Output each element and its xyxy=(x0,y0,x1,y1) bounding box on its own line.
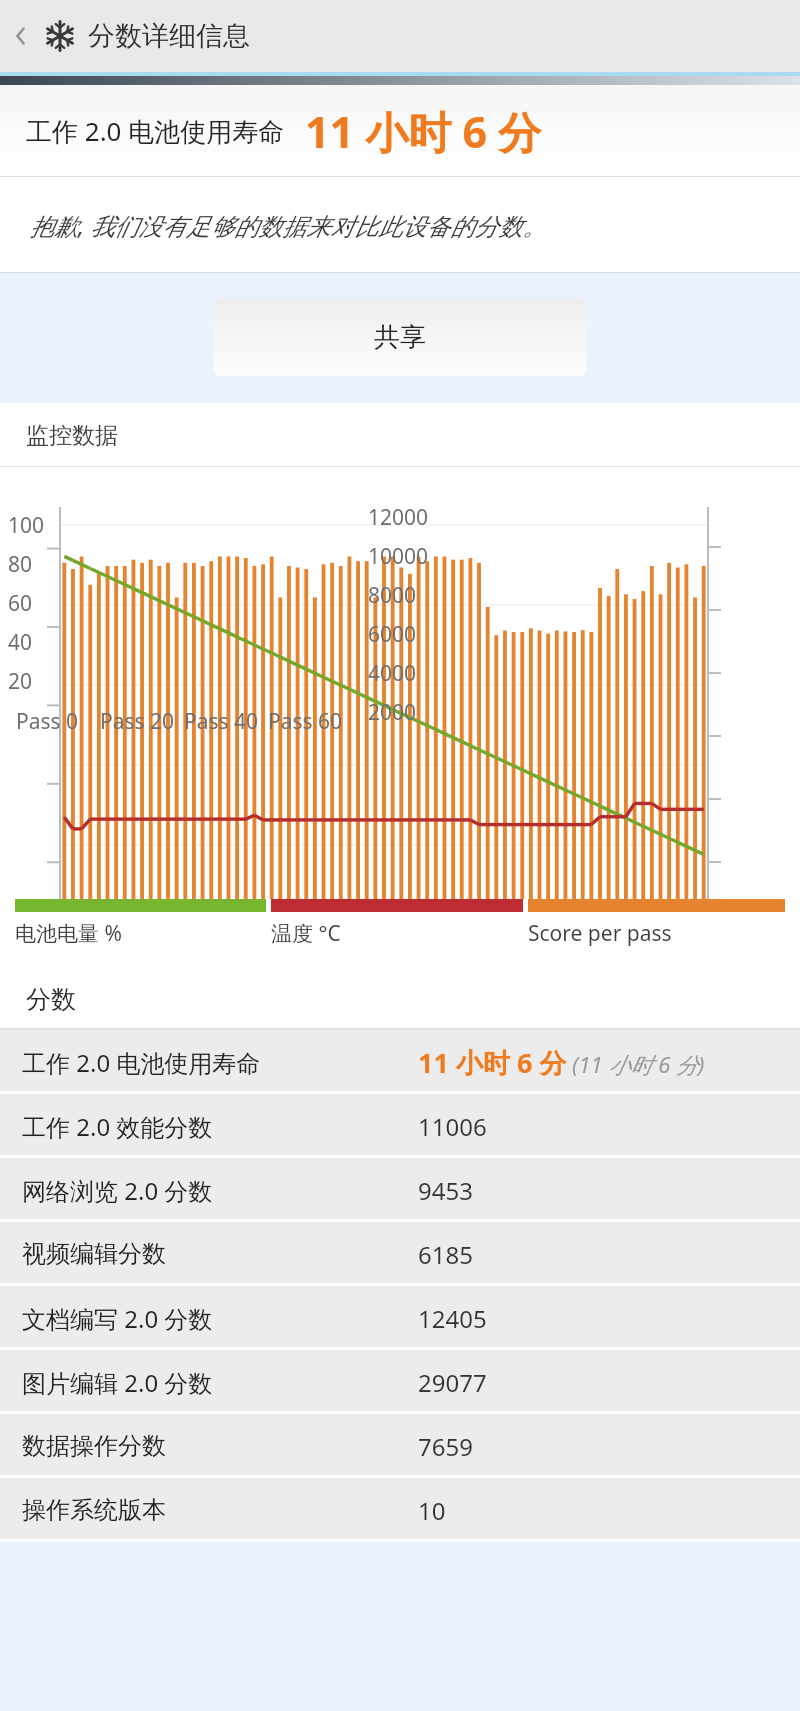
button[interactable]: 网络浏览 2.0 分数 xyxy=(0,1158,800,1222)
staticText: 11 小时 6 分 (11 小时 6 分) xyxy=(418,1044,705,1081)
staticText: 数据操作分数 xyxy=(22,1431,166,1461)
staticText: 9453 xyxy=(418,1174,473,1207)
button[interactable]: 操作系统版本 xyxy=(0,1478,800,1542)
staticText: 60 xyxy=(8,589,52,618)
staticText: 监控数据 xyxy=(26,421,118,450)
staticText: 7659 xyxy=(418,1430,473,1463)
staticText: 40 xyxy=(8,628,52,657)
staticText: 29077 xyxy=(418,1366,487,1399)
staticText: 分数详细信息 xyxy=(88,19,250,53)
staticText: 6000 xyxy=(368,620,417,649)
staticText: 12405 xyxy=(418,1302,487,1335)
staticText: 10 xyxy=(418,1494,446,1527)
staticText: 视频编辑分数 xyxy=(22,1239,166,1269)
staticText: 6185 xyxy=(418,1238,473,1271)
staticText: 11 小时 6 分 xyxy=(305,102,542,161)
staticText: 温度 °C xyxy=(271,919,341,948)
staticText: 工作 2.0 效能分数 xyxy=(22,1110,213,1143)
button[interactable]: 工作 2.0 电池使用寿命 xyxy=(0,1030,800,1094)
staticText: 20 xyxy=(8,667,52,696)
staticText: Pass 40 xyxy=(184,707,259,736)
button[interactable]: 视频编辑分数 xyxy=(0,1222,800,1286)
button[interactable]: 图片编辑 2.0 分数 xyxy=(0,1350,800,1414)
staticText: 图片编辑 2.0 分数 xyxy=(22,1366,213,1399)
button[interactable]: 数据操作分数 xyxy=(0,1414,800,1478)
staticText: 工作 2.0 电池使用寿命 xyxy=(22,1046,261,1079)
staticText: 网络浏览 2.0 分数 xyxy=(22,1174,213,1207)
staticText: 11006 xyxy=(418,1110,487,1143)
staticText: 80 xyxy=(8,550,52,579)
staticText: Pass 20 xyxy=(100,707,175,736)
staticText: 抱歉, 我们没有足够的数据来对比此设备的分数。 xyxy=(30,209,547,242)
staticText: Pass 60 xyxy=(268,707,343,736)
staticText: 12000 xyxy=(368,503,429,532)
staticText: 10000 xyxy=(368,542,429,571)
button[interactable]: 文档编写 2.0 分数 xyxy=(0,1286,800,1350)
button[interactable]: 共享 xyxy=(214,298,586,376)
staticText: 操作系统版本 xyxy=(22,1495,166,1525)
staticText: 8000 xyxy=(368,581,417,610)
staticText: 文档编写 2.0 分数 xyxy=(22,1302,213,1335)
staticText: 工作 2.0 电池使用寿命 xyxy=(26,113,285,149)
staticText: Pass 0 xyxy=(16,707,79,736)
staticText: Score per pass xyxy=(528,919,672,948)
staticText: 2000 xyxy=(368,698,417,727)
staticText: 4000 xyxy=(368,659,417,688)
staticText: 共享 xyxy=(374,321,426,354)
button[interactable]: Back xyxy=(4,19,38,53)
staticText: 分数 xyxy=(26,984,76,1015)
staticText: 电池电量 % xyxy=(15,919,122,948)
button[interactable]: 工作 2.0 效能分数 xyxy=(0,1094,800,1158)
staticText: 100 xyxy=(8,511,52,540)
